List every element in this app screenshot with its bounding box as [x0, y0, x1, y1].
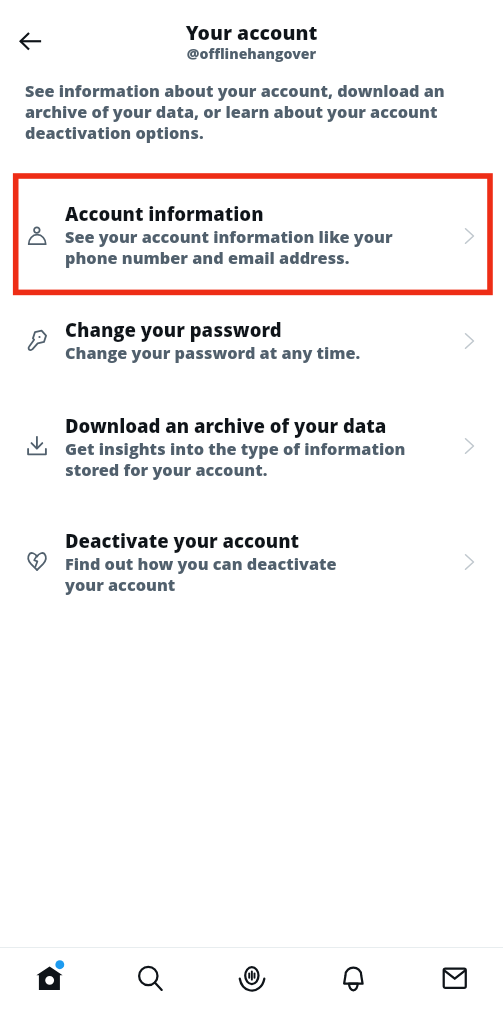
staticText: See information about your account, down…	[25, 80, 471, 143]
button[interactable]: Notifications	[301, 947, 402, 1024]
button[interactable]: Change your password	[0, 291, 503, 385]
staticText: Get insights into the type of informatio…	[65, 438, 413, 480]
button[interactable]: Account information	[0, 173, 503, 292]
staticText: Change your password at any time.	[65, 342, 361, 363]
button[interactable]: Spaces	[200, 947, 301, 1024]
staticText: See your account information like your p…	[65, 226, 405, 268]
button[interactable]: Messages	[402, 947, 503, 1024]
staticText: Your account	[0, 21, 503, 45]
staticText: Download an archive of your data	[65, 416, 387, 438]
staticText: Deactivate your account	[65, 531, 300, 553]
button[interactable]: Back	[8, 19, 52, 63]
button[interactable]: Download an archive of your data	[0, 387, 503, 502]
staticText: Change your password	[65, 320, 282, 342]
button[interactable]: Deactivate your account	[0, 502, 503, 617]
button[interactable]: Home	[0, 947, 100, 1024]
button[interactable]: Search	[100, 947, 200, 1024]
staticText: Account information	[65, 204, 264, 226]
staticText: Find out how you can deactivate your acc…	[65, 553, 365, 595]
staticText: @offlinehangover	[0, 45, 503, 63]
